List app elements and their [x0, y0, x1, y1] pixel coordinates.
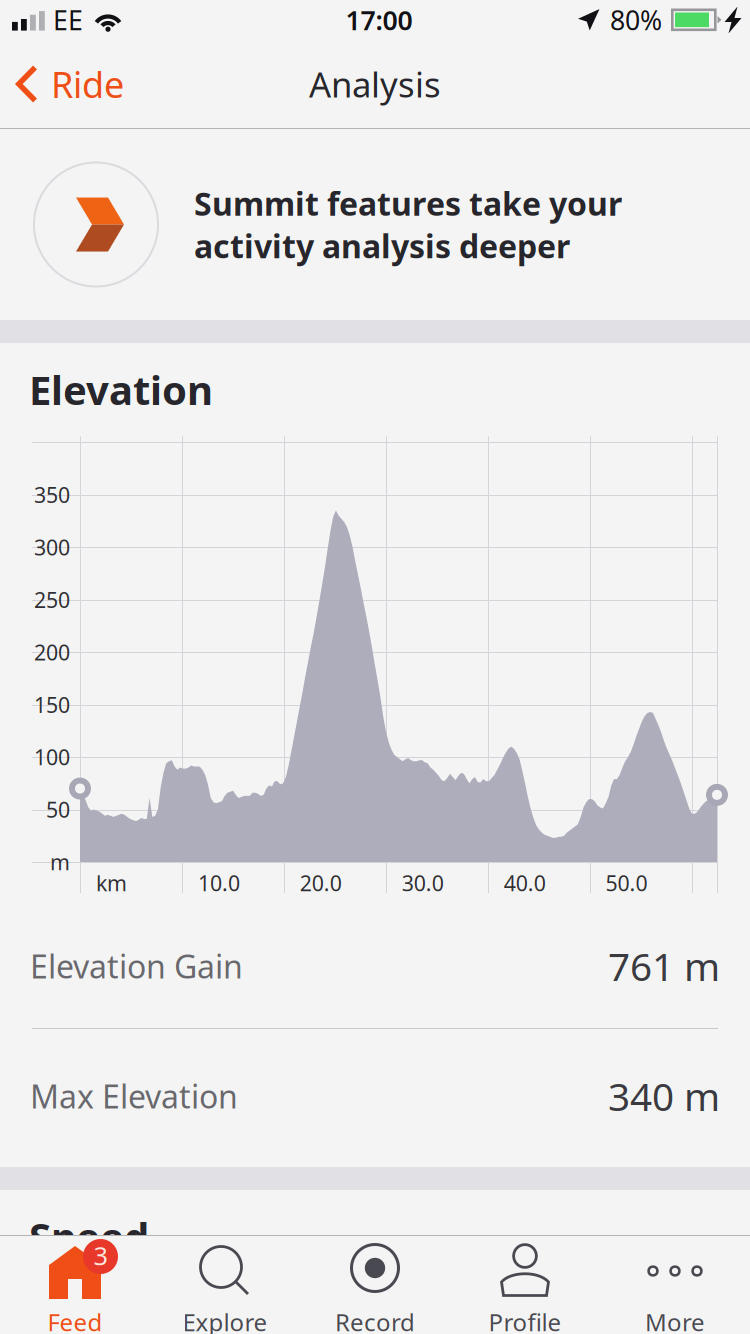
staticText: 50.0: [606, 869, 648, 897]
staticText: 50: [46, 795, 70, 824]
button[interactable]: Profile: [450, 1236, 600, 1334]
button[interactable]: More: [600, 1236, 750, 1334]
staticText: Max Elevation: [30, 1075, 238, 1117]
staticText: Summit features take your: [194, 182, 622, 224]
staticText: km: [96, 869, 127, 897]
button[interactable]: Explore: [150, 1236, 300, 1334]
staticText: m: [50, 848, 70, 876]
button[interactable]: 3: [0, 1236, 150, 1334]
staticText: 40.0: [504, 869, 546, 897]
staticText: 200: [34, 638, 70, 666]
staticText: More: [645, 1306, 705, 1334]
staticText: Ride: [51, 60, 124, 108]
button[interactable]: Elevation Gain: [0, 904, 750, 1028]
staticText: 300: [34, 533, 70, 561]
button[interactable]: Record: [300, 1236, 450, 1334]
staticText: 350: [34, 481, 70, 509]
staticText: activity analysis deeper: [194, 224, 570, 267]
staticText: Elevation Gain: [30, 945, 243, 987]
staticText: Analysis: [309, 61, 441, 107]
staticText: 3: [93, 1239, 107, 1272]
staticText: Record: [335, 1306, 415, 1334]
staticText: Feed: [47, 1306, 102, 1334]
button[interactable]: Ride: [0, 40, 140, 128]
staticText: 20.0: [300, 869, 342, 897]
staticText: 30.0: [402, 869, 444, 897]
staticText: Profile: [488, 1306, 561, 1334]
staticText: 100: [34, 743, 70, 771]
button[interactable]: Summit features take your: [0, 129, 750, 320]
staticText: 250: [34, 585, 70, 614]
staticText: 17:00: [345, 2, 412, 38]
staticText: 340 m: [608, 1070, 720, 1122]
staticText: EE: [53, 2, 83, 38]
staticText: 80%: [610, 2, 662, 38]
staticText: 10.0: [198, 869, 240, 897]
button[interactable]: Max Elevation: [0, 1029, 750, 1163]
staticText: Elevation: [29, 363, 213, 416]
staticText: 761 m: [608, 940, 720, 992]
staticText: Speed: [29, 1210, 149, 1263]
staticText: 150: [34, 690, 70, 719]
staticText: Explore: [182, 1306, 267, 1334]
